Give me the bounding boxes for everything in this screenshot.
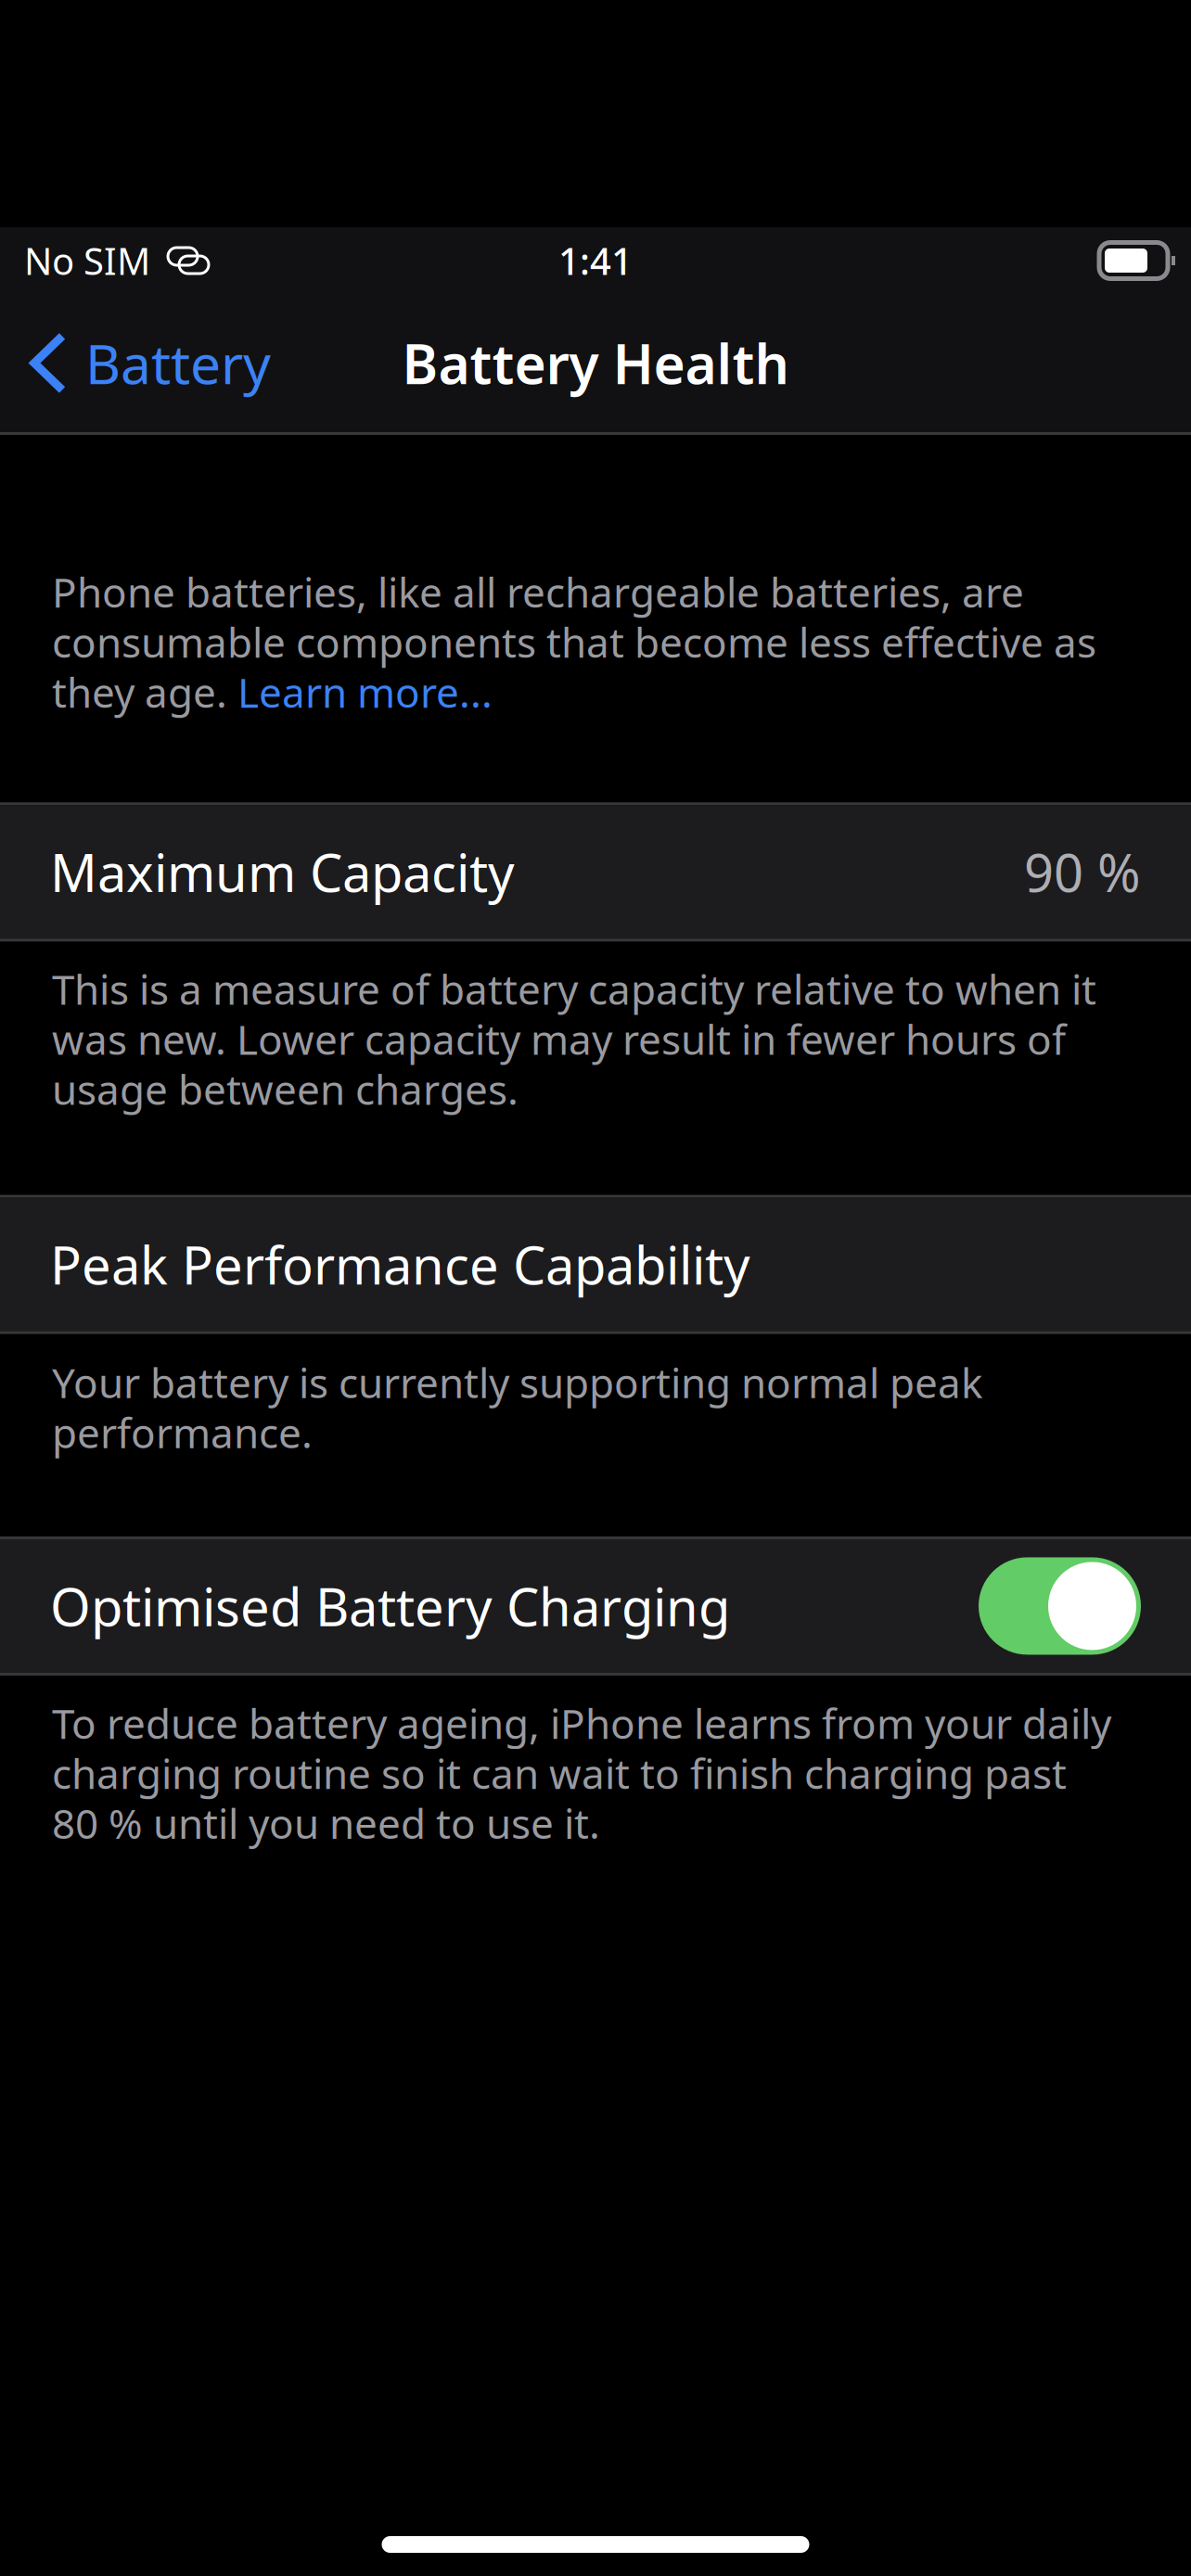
- staticText: Your battery is currently supporting nor…: [52, 1355, 982, 1460]
- button[interactable]: Peak Performance Capability: [0, 1198, 1191, 1331]
- staticText: Maximum Capacity: [50, 837, 515, 906]
- button[interactable]: Maximum Capacity: [0, 805, 1191, 939]
- staticText: This is a measure of battery capacity re…: [52, 962, 1096, 1116]
- staticText: Peak Performance Capability: [50, 1230, 750, 1299]
- button[interactable]: Learn more about battery health: [239, 1111, 490, 1154]
- button[interactable]: Battery: [0, 294, 293, 432]
- staticText: Battery: [85, 327, 271, 399]
- staticText: 90 %: [1024, 837, 1141, 906]
- staticText: No SIM: [24, 236, 150, 285]
- staticText: Phone batteries, like all rechargeable b…: [52, 565, 1096, 719]
- staticText: Battery Health: [402, 327, 789, 399]
- staticText: 1:41: [558, 236, 633, 285]
- staticText: To reduce battery ageing, iPhone learns …: [52, 1696, 1111, 1850]
- button[interactable]: Optimised Battery Charging: [979, 1557, 1141, 1655]
- staticText: Optimised Battery Charging: [50, 1572, 730, 1641]
